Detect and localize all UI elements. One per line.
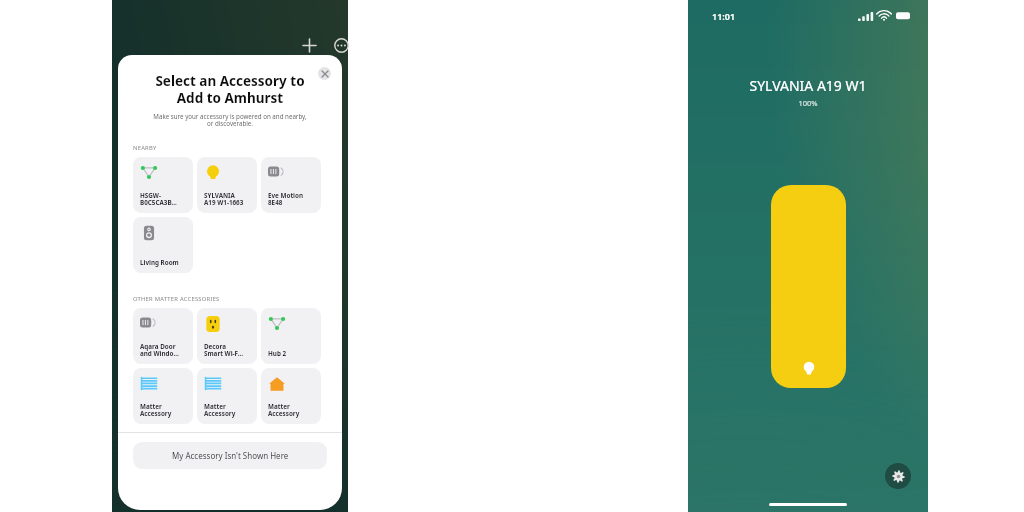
button[interactable]: Settings: [885, 463, 911, 489]
staticText: HSGW- B0C5CA3B...: [140, 191, 177, 207]
staticText: SYLVANIA A19 W1: [688, 76, 928, 95]
staticText: Aqara Door and Windo...: [140, 342, 179, 358]
staticText: Matter Accessory: [268, 402, 300, 418]
staticText: NEARBY: [133, 144, 157, 152]
button[interactable]: Matter Accessory: [261, 368, 321, 424]
staticText: Decora Smart Wi-F...: [204, 342, 243, 358]
button[interactable]: Eve Motion 8E48: [261, 157, 321, 213]
button[interactable]: Close: [318, 67, 331, 80]
button[interactable]: Add accessory: [298, 34, 320, 56]
button[interactable]: My Accessory Isn't Shown Here: [133, 442, 327, 469]
staticText: Living Room: [140, 258, 179, 267]
button[interactable]: Aqara Door and Windo...: [133, 308, 193, 364]
staticText: 100%: [688, 98, 928, 108]
staticText: Hub 2: [268, 349, 287, 358]
staticText: Matter Accessory: [140, 402, 172, 418]
button[interactable]: Living Room: [133, 217, 193, 273]
button[interactable]: More options: [330, 34, 352, 56]
button[interactable]: Hub 2: [261, 308, 321, 364]
staticText: Make sure your accessory is powered on a…: [128, 112, 332, 128]
staticText: My Accessory Isn't Shown Here: [172, 450, 289, 461]
staticText: Eve Motion 8E48: [268, 191, 304, 207]
button[interactable]: HSGW- B0C5CA3B...: [133, 157, 193, 213]
staticText: SYLVANIA A19 W1-1663: [204, 191, 244, 207]
staticText: Select an Accessory to Add to Amhurst: [136, 72, 324, 107]
button[interactable]: Matter Accessory: [133, 368, 193, 424]
button[interactable]: SYLVANIA A19 W1-1663: [197, 157, 257, 213]
button[interactable]: Decora Smart Wi-F...: [197, 308, 257, 364]
staticText: Matter Accessory: [204, 402, 236, 418]
staticText: 11:01: [712, 10, 736, 22]
button[interactable]: Matter Accessory: [197, 368, 257, 424]
button[interactable]: Brightness slider: [771, 185, 846, 388]
staticText: OTHER MATTER ACCESSORIES: [133, 295, 220, 303]
